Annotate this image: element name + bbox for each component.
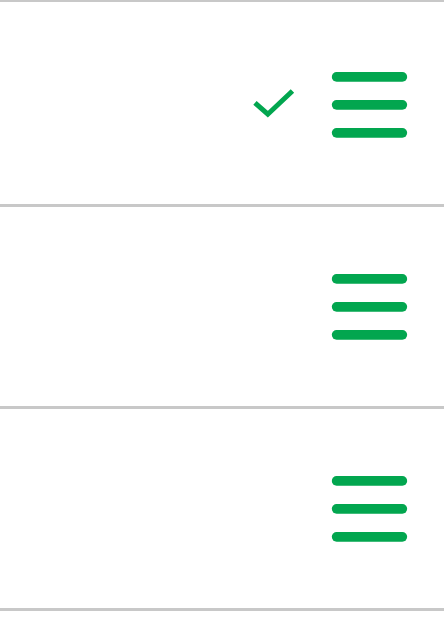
button[interactable]: Open list menu	[0, 409, 444, 608]
button[interactable]: Open list menu	[331, 273, 409, 341]
button[interactable]: Selected	[0, 2, 444, 204]
button[interactable]: Open list menu	[0, 207, 444, 406]
other: Selected	[250, 88, 296, 120]
button[interactable]: Open list menu	[331, 71, 409, 139]
button[interactable]: Open list menu	[331, 475, 409, 543]
